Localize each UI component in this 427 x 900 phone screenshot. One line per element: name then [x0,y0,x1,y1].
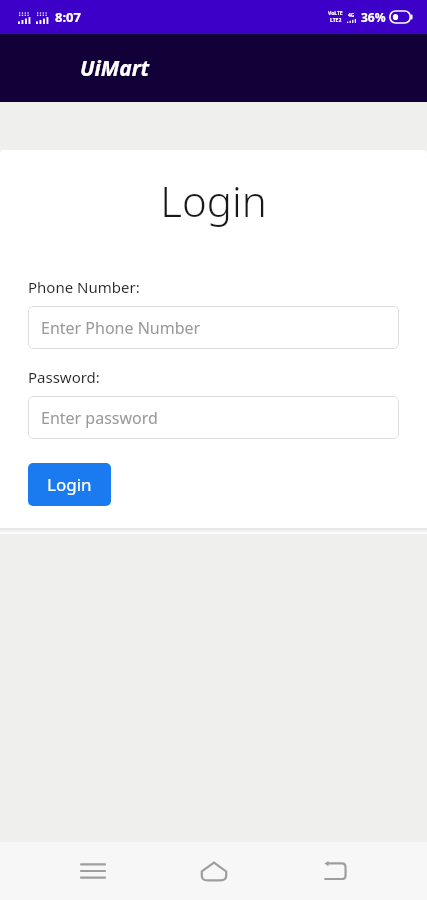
staticText: LTE2 [330,17,342,24]
staticText: Login [47,473,92,496]
staticText: VoLTE [328,10,343,17]
staticText: UiMart [80,54,150,83]
staticText: 8:07 [55,8,81,26]
button[interactable]: Back [306,843,362,899]
button[interactable]: Home [186,843,242,899]
staticText: 4G [348,12,355,19]
staticText: Enter password [41,407,158,429]
button[interactable]: Enter password [28,396,399,439]
button[interactable]: Enter Phone Number [28,306,399,349]
staticText: Password: [28,367,100,387]
staticText: Phone Number: [28,277,140,297]
staticText: Enter Phone Number [41,317,201,339]
button[interactable]: Recent apps [65,843,121,899]
button[interactable]: Login [28,463,111,506]
staticText: Login [28,172,399,229]
staticText: 36% [361,9,386,25]
